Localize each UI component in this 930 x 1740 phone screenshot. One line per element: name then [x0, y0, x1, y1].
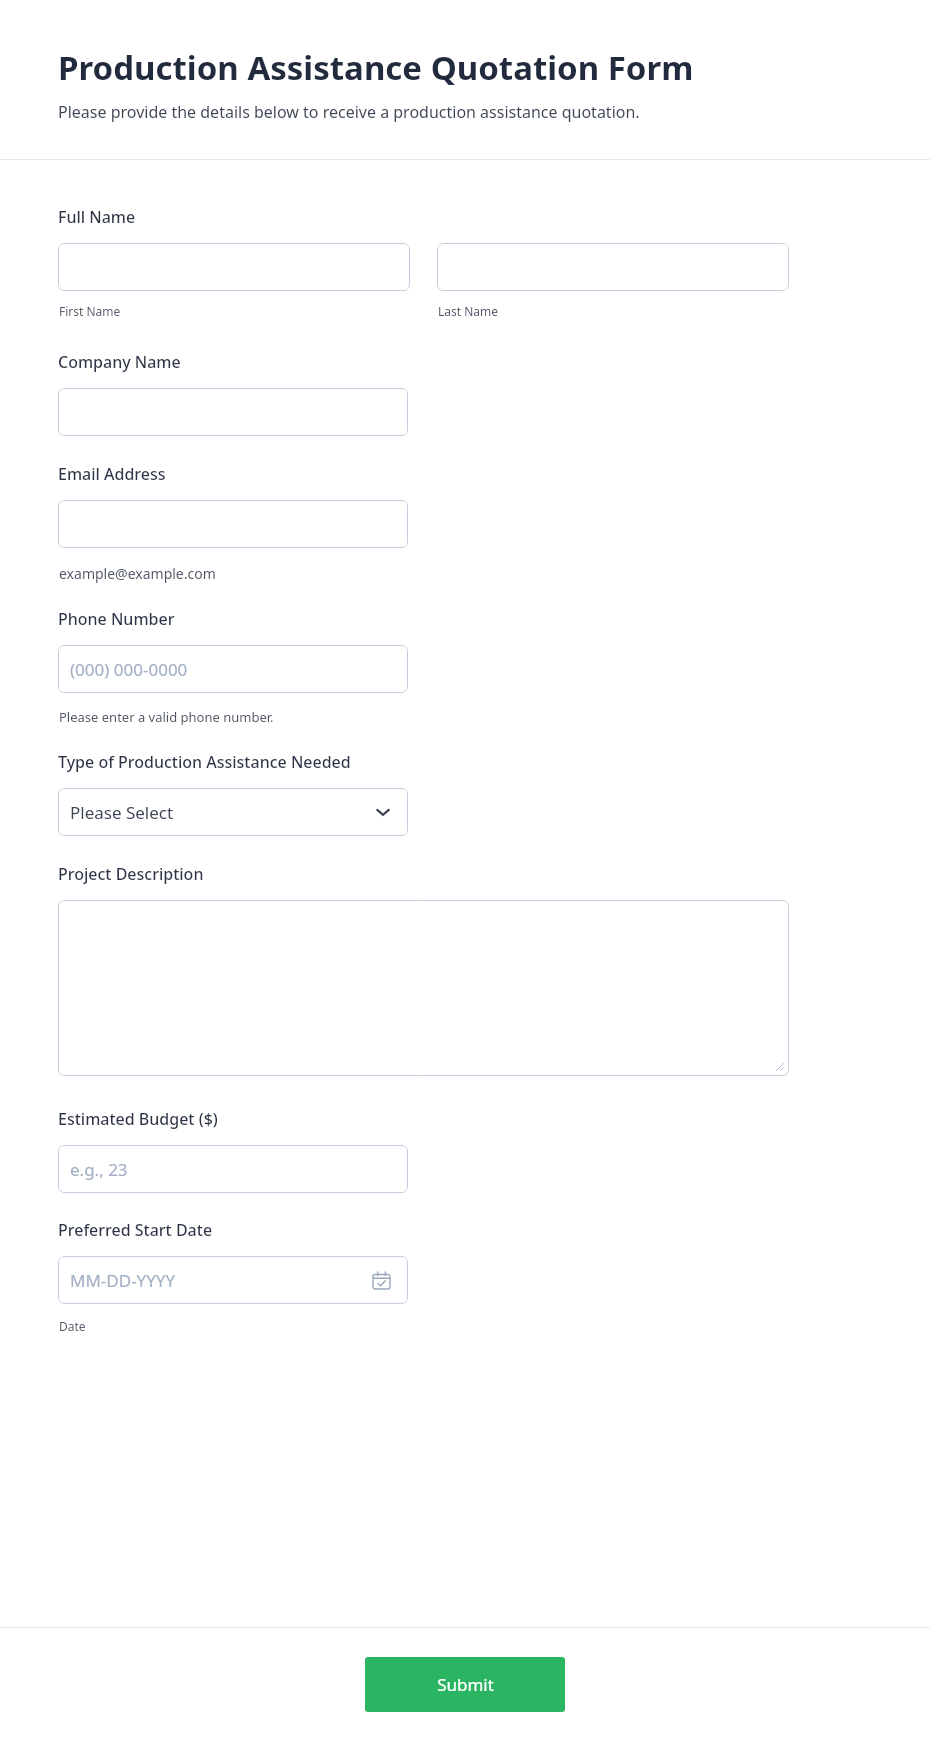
staticText: Project Description	[58, 863, 204, 885]
staticText: Please Select	[70, 801, 174, 824]
staticText: Estimated Budget ($)	[58, 1108, 218, 1130]
button[interactable]: Email Address	[58, 500, 408, 548]
button[interactable]: First Name	[58, 243, 410, 291]
button[interactable]: Submit	[365, 1657, 565, 1712]
staticText: Preferred Start Date	[58, 1219, 213, 1241]
staticText: (000) 000-0000	[70, 658, 188, 681]
button[interactable]: Type of Production Assistance Needed	[58, 788, 408, 836]
staticText: First Name	[59, 303, 121, 319]
staticText: Submit	[437, 1673, 494, 1696]
staticText: e.g., 23	[70, 1158, 128, 1181]
button[interactable]: Phone Number	[58, 645, 408, 693]
staticText: example@example.com	[59, 564, 216, 583]
staticText: Phone Number	[58, 608, 175, 630]
staticText: Full Name	[58, 206, 136, 228]
staticText: Email Address	[58, 463, 166, 485]
staticText: Company Name	[58, 351, 181, 373]
staticText: Last Name	[438, 303, 499, 319]
button[interactable]: Open calendar	[368, 1267, 394, 1293]
staticText: Please provide the details below to rece…	[58, 101, 640, 123]
staticText: Please enter a valid phone number.	[59, 708, 274, 726]
staticText: Type of Production Assistance Needed	[58, 751, 351, 773]
staticText: Date	[59, 1318, 86, 1334]
staticText: Production Assistance Quotation Form	[58, 45, 694, 90]
button[interactable]: Estimated Budget	[58, 1145, 408, 1193]
button[interactable]: Last Name	[437, 243, 789, 291]
button[interactable]: Company Name	[58, 388, 408, 436]
staticText: MM-DD-YYYY	[70, 1269, 176, 1292]
button[interactable]: Project Description	[58, 900, 789, 1076]
button[interactable]: Preferred Start Date	[58, 1256, 408, 1304]
